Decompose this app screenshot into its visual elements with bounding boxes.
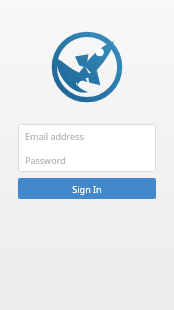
staticText: Sign In xyxy=(72,183,102,195)
staticText: Email address xyxy=(25,130,84,142)
staticText: Password xyxy=(25,154,66,166)
other: App logo xyxy=(51,31,123,103)
button[interactable]: Email address xyxy=(18,124,156,148)
button[interactable]: Password xyxy=(18,148,156,172)
button[interactable]: Sign In xyxy=(18,178,156,199)
